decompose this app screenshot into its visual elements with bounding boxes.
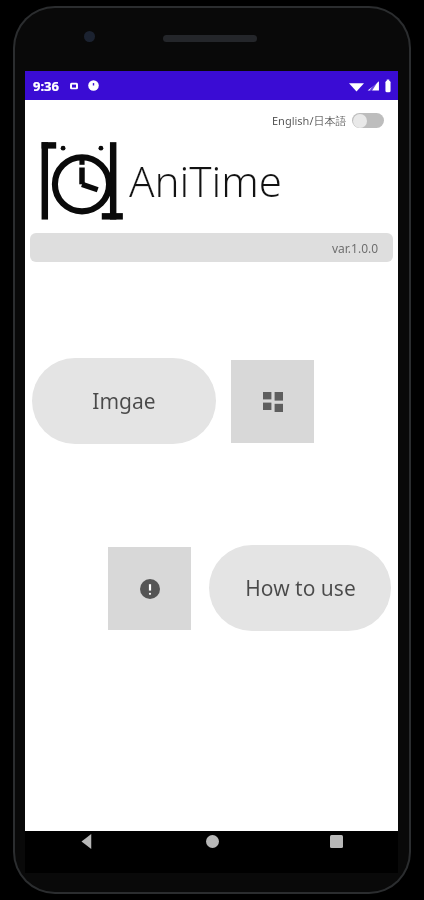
staticText: Imgae (92, 387, 156, 416)
button[interactable]: English/日本語 (268, 109, 388, 132)
button[interactable]: Information (108, 547, 191, 630)
staticText: 9:36 (33, 77, 59, 95)
staticText: English/日本語 (272, 113, 347, 128)
staticText: var.1.0.0 (332, 240, 379, 256)
button[interactable]: Dashboard (231, 360, 314, 443)
button[interactable]: Imgae (32, 358, 216, 444)
button[interactable]: Back (25, 831, 150, 873)
button[interactable]: How to use (209, 545, 391, 631)
button[interactable]: Recent apps (274, 831, 398, 873)
staticText: AniTime (129, 152, 282, 209)
button[interactable]: Home (150, 831, 274, 873)
staticText: How to use (245, 574, 356, 603)
